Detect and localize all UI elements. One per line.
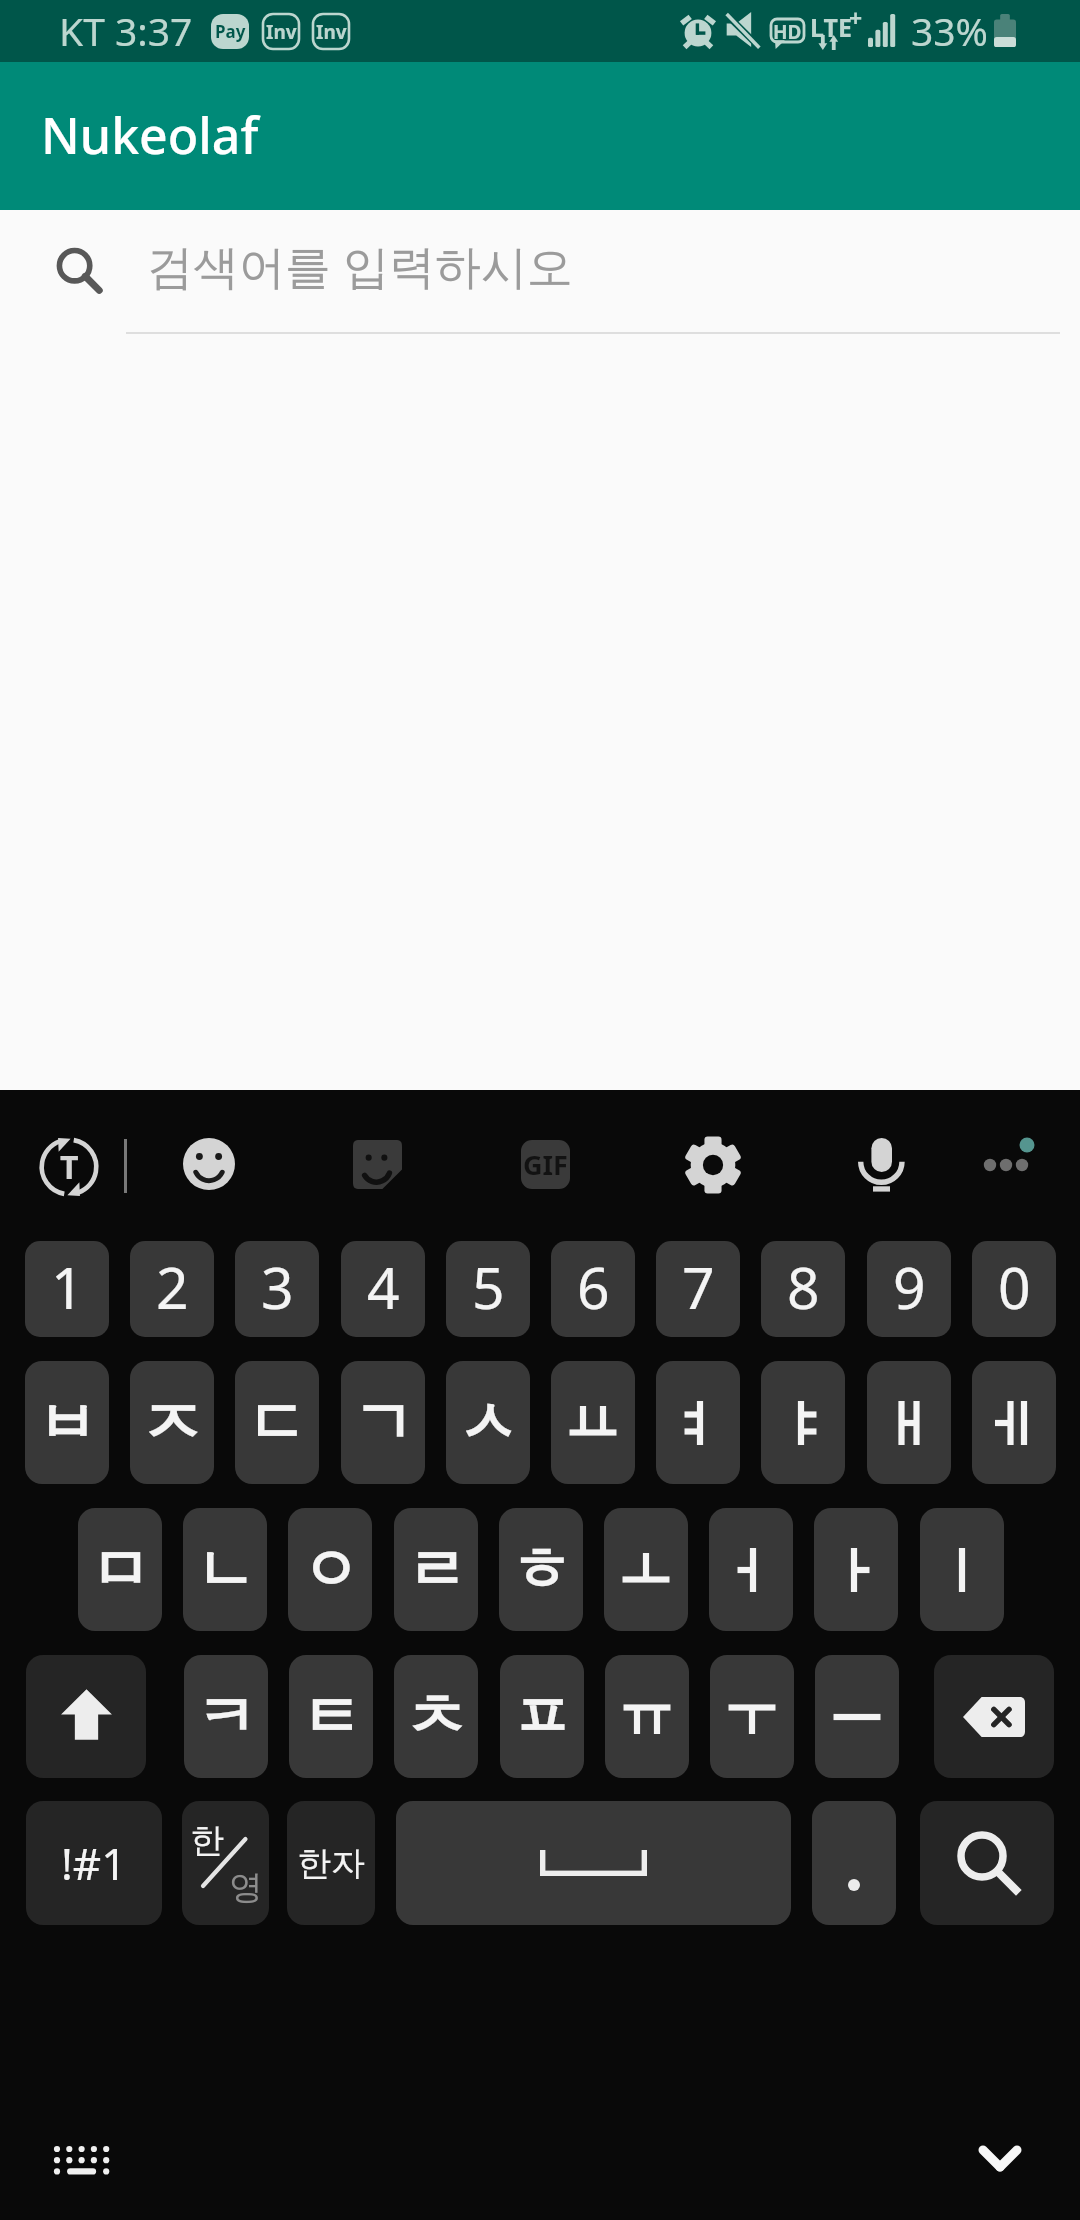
button[interactable]: Voice input [860,1138,912,1190]
button[interactable]: ㅅ [446,1361,530,1484]
button[interactable]: ㅇ [288,1508,372,1631]
button[interactable]: ㅂ [25,1361,109,1484]
staticText: 8 [787,1248,820,1326]
staticText: 2 [156,1248,189,1326]
staticText: ㅇ [300,1532,360,1608]
staticText: ㅂ [37,1385,97,1461]
button[interactable]: ㄹ [394,1508,478,1631]
button[interactable]: ㄱ [341,1361,425,1484]
staticText: ㅊ [406,1679,466,1755]
button[interactable] [814,1508,898,1631]
button[interactable]: Emoji [183,1138,235,1190]
staticText: ㄴ [195,1532,255,1608]
button[interactable] [604,1508,688,1631]
staticText: 영 [229,1866,263,1909]
button[interactable]: 6 [551,1241,635,1337]
button[interactable] [815,1655,899,1778]
button[interactable]: 0 [972,1241,1056,1337]
staticText: Inv [316,19,347,45]
staticText: 3 [261,1248,294,1326]
staticText: ㄱ [353,1385,413,1461]
staticText: 한자 [297,1842,365,1885]
button[interactable]: 3 [235,1241,319,1337]
button[interactable]: Search [57,249,101,293]
button[interactable]: Space [396,1801,791,1925]
button[interactable]: Stickers [353,1140,402,1189]
button[interactable]: 4 [341,1241,425,1337]
button[interactable]: ㄷ [235,1361,319,1484]
staticText: ㅅ [458,1385,518,1461]
button[interactable]: Hide keyboard [960,2118,1040,2198]
button[interactable]: 1 [25,1241,109,1337]
button[interactable]: Settings [684,1136,742,1194]
staticText: ㄷ [247,1385,307,1461]
staticText: HD [773,19,802,42]
button[interactable] [605,1655,689,1778]
staticText: LTE [810,10,852,44]
button[interactable] [710,1655,794,1778]
button[interactable]: Backspace [934,1655,1054,1778]
button[interactable] [761,1361,845,1484]
button[interactable] [656,1361,740,1484]
staticText: + [849,2,863,33]
staticText: 검색어를 입력하시오 [147,234,573,297]
button[interactable]: 2 [130,1241,214,1337]
staticText: ㅌ [301,1679,361,1755]
button[interactable]: Nukeolaf [0,62,1080,210]
button[interactable] [709,1508,793,1631]
button[interactable]: More options [969,1125,1041,1197]
staticText: KT 3:37 [59,4,193,57]
staticText: Inv [266,19,297,45]
staticText: ㅁ [90,1532,150,1608]
staticText: 4 [367,1248,400,1326]
button[interactable]: ㄴ [183,1508,267,1631]
staticText: 1 [51,1248,84,1326]
button[interactable]: ㅎ [499,1508,583,1631]
button[interactable]: ㅈ [130,1361,214,1484]
button[interactable]: Change keyboard [42,2122,122,2202]
staticText: ㅍ [512,1679,572,1755]
button[interactable]: 한자 [287,1801,375,1925]
staticText: 0 [998,1248,1031,1326]
button[interactable]: !#1 [26,1801,162,1925]
button[interactable]: ㅊ [394,1655,478,1778]
button[interactable]: 7 [656,1241,740,1337]
staticText: Nukeolaf [41,101,259,169]
button[interactable]: GIF [521,1140,570,1189]
button[interactable]: Shift [26,1655,146,1778]
button[interactable] [920,1508,1004,1631]
staticText: !#1 [61,1833,127,1893]
staticText: ㄹ [406,1532,466,1608]
button[interactable]: ㅁ [78,1508,162,1631]
button[interactable]: ㅍ [500,1655,584,1778]
staticText: GIF [523,1146,568,1183]
button[interactable]: Search [920,1801,1054,1925]
staticText: Pay [215,20,246,43]
staticText: 5 [472,1248,505,1326]
button[interactable] [551,1361,635,1484]
button[interactable]: 한 [182,1801,269,1925]
button[interactable]: ㅋ [184,1655,268,1778]
button[interactable]: 8 [761,1241,845,1337]
staticText: ㅋ [196,1679,256,1755]
staticText: T [60,1145,79,1189]
staticText: 33% [911,4,989,57]
staticText: ㅈ [142,1385,202,1461]
button[interactable]: 9 [867,1241,951,1337]
staticText: 한 [190,1819,224,1862]
button[interactable]: 5 [446,1241,530,1337]
staticText: 7 [682,1248,715,1326]
staticText: 6 [577,1248,610,1326]
staticText: ㅎ [511,1532,571,1608]
staticText: 9 [893,1248,926,1326]
button[interactable]: Period [812,1801,896,1925]
button[interactable]: ㅌ [289,1655,373,1778]
button[interactable] [867,1361,951,1484]
button[interactable] [972,1361,1056,1484]
button[interactable]: Translate [38,1136,100,1198]
